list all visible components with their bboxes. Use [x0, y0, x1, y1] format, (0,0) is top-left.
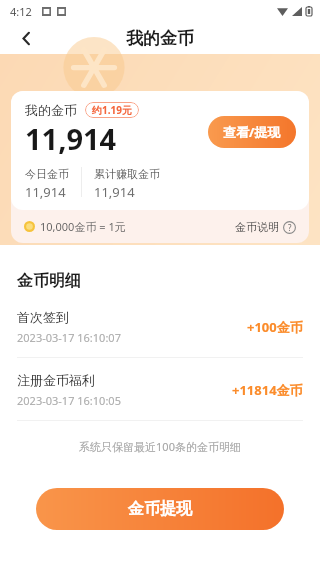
staticText: 首次签到: [17, 309, 69, 325]
staticText: 今日金币: [25, 167, 69, 181]
staticText: 我的金币: [126, 28, 194, 49]
staticText: 注册金币福利: [17, 372, 95, 388]
button[interactable]: Back: [8, 22, 44, 54]
button[interactable]: 金币提现: [36, 488, 284, 530]
button[interactable]: 金币说明: [235, 220, 296, 234]
staticText: 约1.19元: [92, 103, 132, 117]
staticText: 2023-03-17 16:10:05: [17, 393, 121, 408]
staticText: 2023-03-17 16:10:07: [17, 330, 121, 345]
staticText: 系统只保留最近100条的金币明细: [0, 439, 320, 454]
staticText: 金币明细: [17, 271, 81, 291]
staticText: ?: [288, 222, 292, 233]
staticText: 4:12: [10, 4, 32, 19]
button[interactable]: 注册金币福利: [0, 358, 320, 420]
staticText: 查看/提现: [223, 123, 281, 141]
staticText: 11,914: [25, 119, 117, 158]
staticText: 金币提现: [128, 499, 192, 519]
staticText: +11814金币: [232, 381, 303, 399]
staticText: 10,000金币 = 1元: [40, 219, 126, 234]
staticText: +100金币: [247, 318, 303, 336]
button[interactable]: 查看/提现: [208, 116, 296, 148]
staticText: 累计赚取金币: [94, 167, 160, 181]
staticText: 金币说明: [235, 220, 279, 234]
button[interactable]: 首次签到: [0, 291, 320, 357]
staticText: 11,914: [25, 183, 66, 201]
staticText: 我的金币: [25, 102, 77, 118]
staticText: 11,914: [94, 183, 135, 201]
